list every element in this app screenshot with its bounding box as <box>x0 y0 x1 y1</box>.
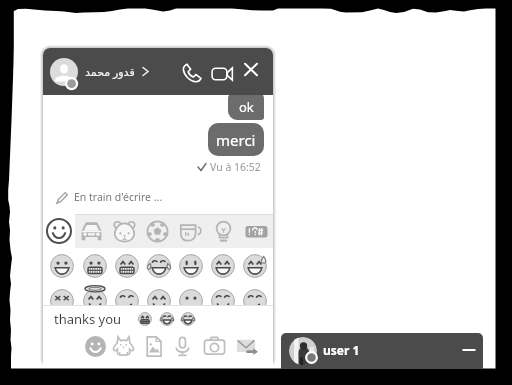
button[interactable]: sym category <box>240 214 273 248</box>
button[interactable]: Emoji <box>239 254 271 278</box>
button[interactable]: merci <box>208 123 264 156</box>
button[interactable]: Emoji <box>143 254 175 278</box>
button[interactable]: Emoji <box>78 289 111 305</box>
staticText: قدور محمد <box>85 64 135 79</box>
button[interactable]: Emoji <box>143 289 175 305</box>
staticText: ok <box>239 98 254 116</box>
staticText: merci <box>216 130 256 150</box>
button[interactable]: Stickers <box>110 333 136 359</box>
button[interactable]: Emoji <box>207 289 239 305</box>
button[interactable]: Emoji <box>45 254 78 278</box>
button[interactable]: Emoji <box>78 254 111 278</box>
button[interactable]: Smileys category <box>43 214 75 248</box>
button[interactable]: Emoji <box>82 333 108 359</box>
button[interactable]: user 1 <box>281 333 483 369</box>
button[interactable]: Emoji <box>207 254 239 278</box>
button[interactable]: Emoji <box>175 254 207 278</box>
button[interactable]: Voice call <box>181 62 203 84</box>
button[interactable]: cup category <box>174 214 207 248</box>
button[interactable]: car category <box>75 214 108 248</box>
button[interactable]: Emoji <box>111 289 143 305</box>
button[interactable]: Photo <box>140 333 166 359</box>
button[interactable]: Emoji <box>45 289 78 305</box>
button[interactable]: Emoji <box>175 289 207 305</box>
staticText: user 1 <box>323 342 360 358</box>
button[interactable]: Emoji <box>239 289 271 305</box>
button[interactable]: Emoji <box>111 254 143 278</box>
button[interactable]: Camera <box>201 333 227 359</box>
button[interactable]: ok <box>228 90 264 120</box>
staticText: En train d'écrire ... <box>74 190 163 204</box>
staticText: Vu à 16:52 <box>210 160 261 174</box>
button[interactable]: ball category <box>141 214 174 248</box>
button[interactable]: Minimize <box>459 340 479 360</box>
button[interactable]: Video call <box>210 62 233 85</box>
button[interactable]: animal category <box>108 214 141 248</box>
button[interactable]: Close chat <box>240 59 262 81</box>
button[interactable]: bulb category <box>207 214 240 248</box>
button[interactable]: Voice message <box>169 333 195 359</box>
button[interactable]: Send <box>234 333 260 359</box>
staticText: thanks you <box>54 310 122 328</box>
